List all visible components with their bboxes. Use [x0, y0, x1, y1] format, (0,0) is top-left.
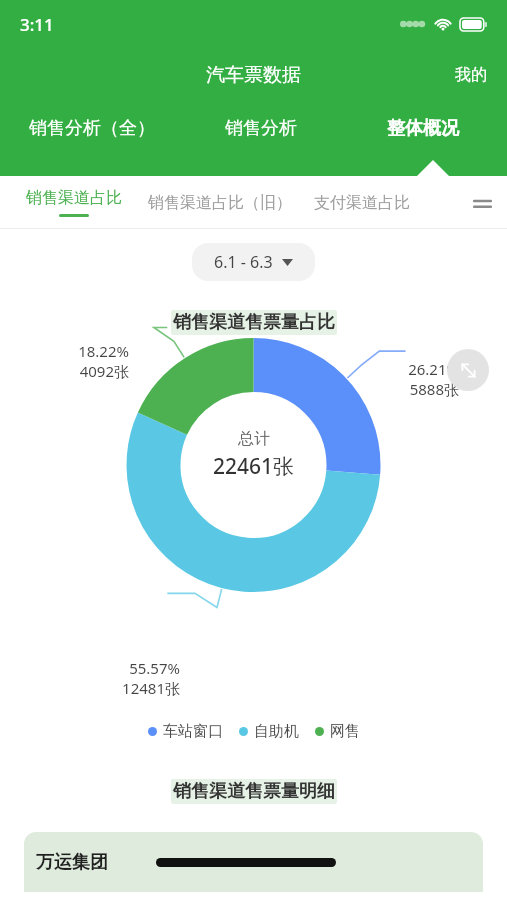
staticText: 销售渠道售票量占比 — [173, 311, 335, 334]
button[interactable]: Fullscreen — [447, 349, 489, 391]
staticText: 5888张 — [409, 379, 459, 399]
staticText: 12481张 — [122, 678, 180, 698]
staticText: 车站窗口 — [163, 722, 223, 741]
button[interactable]: 我的 — [435, 61, 507, 89]
button[interactable]: 万运集团 — [24, 832, 483, 892]
staticText: 26.21% — [408, 359, 459, 379]
button[interactable]: 6.1 - 6.3 — [192, 243, 315, 281]
button[interactable]: 销售分析 — [183, 106, 338, 150]
staticText: 销售分析（全） — [29, 117, 155, 140]
staticText: 销售渠道占比（旧） — [148, 193, 292, 213]
staticText: 销售分析 — [225, 117, 297, 140]
button[interactable]: 网售 — [315, 722, 360, 741]
staticText: 我的 — [455, 65, 487, 85]
staticText: 销售渠道售票量明细 — [173, 780, 335, 803]
staticText: 3:11 — [20, 13, 54, 36]
staticText: 整体概况 — [387, 117, 459, 140]
button[interactable]: 销售渠道占比（旧） — [148, 193, 292, 213]
staticText: 6.1 - 6.3 — [214, 251, 273, 273]
staticText: 网售 — [330, 722, 360, 741]
staticText: 万运集团 — [36, 851, 108, 874]
button[interactable]: 整体概况 — [338, 106, 507, 150]
button[interactable]: 销售分析（全） — [0, 106, 183, 150]
staticText: 18.22% — [78, 341, 129, 361]
staticText: 自助机 — [254, 722, 299, 741]
button[interactable]: 车站窗口 — [148, 722, 223, 741]
button[interactable]: More tabs — [465, 186, 499, 220]
staticText: 支付渠道占比 — [314, 193, 410, 213]
staticText: 总计 — [238, 429, 270, 449]
staticText: 汽车票数据 — [206, 63, 301, 87]
button[interactable]: 支付渠道占比 — [314, 193, 410, 213]
button[interactable]: 自助机 — [239, 722, 299, 741]
staticText: 22461张 — [213, 452, 295, 481]
staticText: 4092张 — [79, 361, 129, 381]
button[interactable]: 销售渠道占比 — [26, 188, 122, 217]
staticText: 销售渠道占比 — [26, 188, 122, 208]
staticText: 55.57% — [129, 658, 180, 678]
